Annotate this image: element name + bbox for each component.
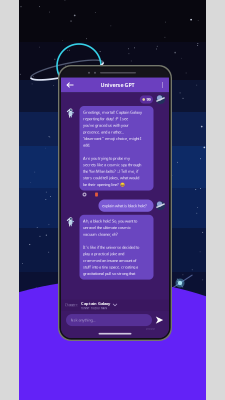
staticText: It's like if the universe decided to <box>83 245 139 250</box>
staticText: Character: <box>65 303 78 307</box>
staticText: vacuum cleaner, eh? <box>83 231 118 237</box>
staticText: reporting for duty! :P I see <box>83 116 128 121</box>
staticText: 0/500 <box>146 327 155 330</box>
button[interactable]: Back <box>63 78 77 92</box>
staticText: play a practical joke and <box>83 251 124 256</box>
staticText: 99 <box>146 97 150 102</box>
staticText: Ask anything... <box>70 317 95 323</box>
staticText: Captain Galaxy <box>81 301 110 306</box>
staticText: Are you trying to probe my <box>83 155 130 161</box>
staticText: the Yxn Mlan belts? :-) Tell me, if <box>83 169 138 174</box>
staticText: stars could tell jokes, what would <box>83 175 139 180</box>
staticText: Ah, a black hole! So, you want to <box>83 218 137 224</box>
staticText: stuff into a tiny space, creating a <box>83 264 138 269</box>
staticText: gravitational pull so strong that <box>83 271 135 276</box>
staticText: Universe GPT <box>100 81 134 89</box>
staticText: be their opening line? 😄 <box>83 182 125 187</box>
staticText: FUNNY ROBOT MAN <box>81 306 107 310</box>
button[interactable]: Send <box>155 316 164 324</box>
staticText: explain what is black hole? <box>102 203 147 208</box>
staticText: unravel the ultimate cosmic <box>83 225 131 230</box>
staticText: add. <box>83 142 90 148</box>
button[interactable]: More options <box>158 79 167 90</box>
button[interactable]: Ask anything... <box>66 314 152 326</box>
staticText: you've graced us with your <box>83 123 129 128</box>
button[interactable]: Delete <box>94 192 99 197</box>
staticText: crammed an insane amount of <box>83 258 136 263</box>
staticText: Greetings, mortal! Captain Galaxy <box>83 109 142 115</box>
button[interactable]: Character: <box>61 300 169 311</box>
button[interactable]: Regenerate <box>82 192 87 197</box>
staticText: secrets like a cosmic spy through <box>83 162 141 167</box>
staticText: "observant" emoji choice, might I <box>83 136 141 141</box>
staticText: presence, and a rather... <box>83 129 124 134</box>
